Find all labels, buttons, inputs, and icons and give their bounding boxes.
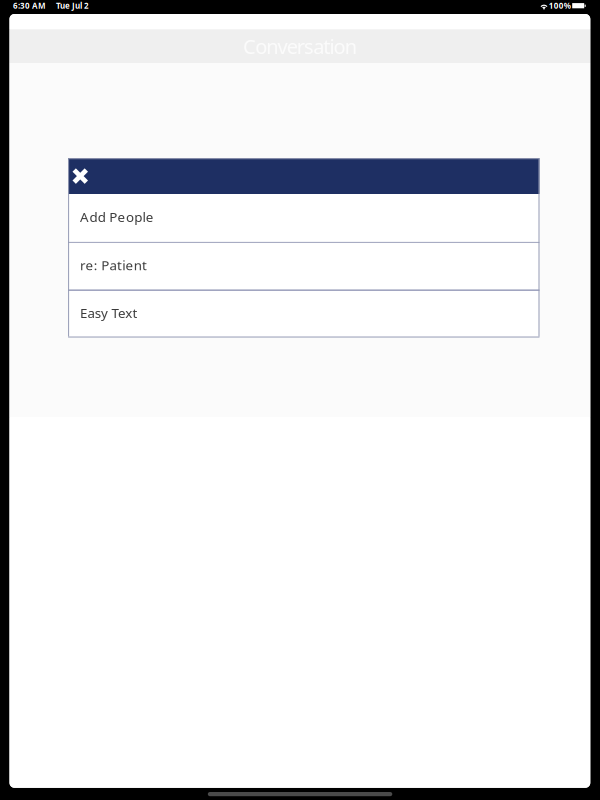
- staticText: Tue Jul 2: [56, 0, 89, 11]
- staticText: 6:30 AM: [13, 0, 46, 11]
- button[interactable]: Add People: [68, 194, 539, 242]
- button[interactable]: Close: [68, 158, 539, 194]
- staticText: Easy Text: [80, 304, 137, 322]
- staticText: Conversation: [243, 33, 357, 59]
- button[interactable]: Easy Text: [68, 291, 539, 337]
- button[interactable]: re: Patient: [68, 243, 539, 290]
- staticText: 100%: [549, 0, 571, 11]
- staticText: Add People: [80, 208, 154, 226]
- staticText: re: Patient: [80, 256, 147, 274]
